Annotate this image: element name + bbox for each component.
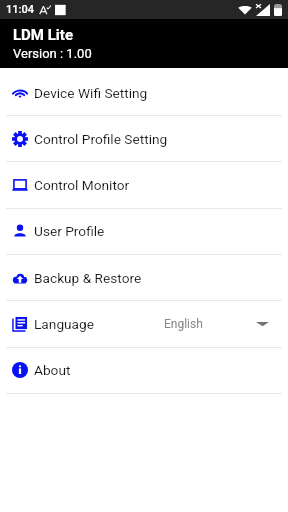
button[interactable]: Device Wifi Setting [0,70,288,116]
staticText: Device Wifi Setting [34,85,148,101]
staticText: Version : 1.00 [13,46,92,61]
button[interactable]: Control Monitor [0,162,288,208]
staticText: Control Profile Setting [34,131,168,147]
button[interactable]: Control Profile Setting [0,116,288,162]
staticText: User Profile [34,223,105,239]
button[interactable]: User Profile [0,208,288,254]
staticText: Backup & Restore [34,270,142,286]
button[interactable]: Language [0,301,288,347]
staticText: 11:04 [6,3,34,16]
staticText: Control Monitor [34,177,130,193]
staticText: LDM Lite [13,26,73,44]
button[interactable]: About [0,347,288,393]
staticText: About [34,362,71,378]
staticText: Language [34,316,94,332]
button[interactable]: Backup & Restore [0,255,288,301]
staticText: English [164,317,203,331]
